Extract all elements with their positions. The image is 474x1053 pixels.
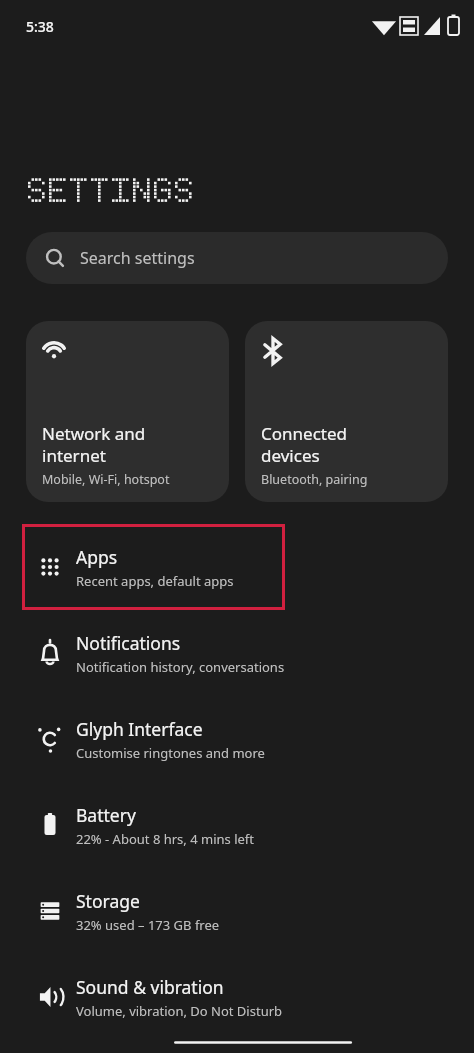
staticText: 5:38 — [26, 17, 54, 36]
staticText: Notification history, conversations — [76, 658, 285, 676]
staticText: Battery — [76, 803, 136, 827]
staticText: Recent apps, default apps — [76, 572, 234, 590]
button[interactable]: Storage — [0, 868, 474, 954]
staticText: Bluetooth, pairing — [261, 471, 368, 488]
button[interactable]: Glyph Interface — [0, 696, 474, 782]
button[interactable]: Apps — [22, 524, 285, 610]
staticText: Search settings — [80, 247, 195, 269]
button[interactable]: Notifications — [0, 610, 474, 696]
staticText: Sound & vibration — [76, 975, 224, 999]
staticText: 22% - About 8 hrs, 4 mins left — [76, 830, 255, 848]
button[interactable]: Connected devices — [245, 321, 448, 502]
staticText: Notifications — [76, 631, 181, 655]
staticText: Apps — [76, 545, 118, 569]
button[interactable]: Battery — [0, 782, 474, 868]
staticText: Network and internet — [42, 422, 146, 467]
staticText: 32% used – 173 GB free — [76, 916, 220, 934]
staticText: Storage — [76, 889, 140, 913]
staticText: Customise ringtones and more — [76, 744, 265, 762]
button[interactable]: Sound & vibration — [0, 954, 474, 1040]
staticText: Volume, vibration, Do Not Disturb — [76, 1002, 283, 1020]
button[interactable]: Network and internet — [26, 321, 229, 502]
staticText: Mobile, Wi-Fi, hotspot — [42, 471, 170, 488]
button[interactable]: Search settings — [26, 232, 448, 284]
staticText: Glyph Interface — [76, 717, 203, 741]
staticText: Connected devices — [261, 422, 347, 467]
